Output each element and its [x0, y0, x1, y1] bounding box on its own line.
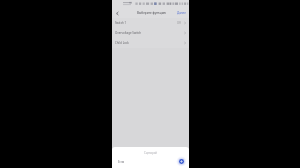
button[interactable]: Switch 1	[112, 18, 189, 28]
staticText: Overvoltage Switch	[115, 31, 142, 35]
button[interactable]: Add condition	[176, 156, 187, 167]
button[interactable]: Overvoltage Switch	[112, 28, 189, 38]
staticText: Далее	[177, 11, 186, 15]
staticText: Child Lock	[115, 41, 129, 45]
staticText: Switch 1	[115, 21, 127, 25]
staticText: Выберите функцию	[137, 11, 166, 15]
button[interactable]: Back	[114, 10, 121, 17]
staticText: Off	[177, 21, 181, 25]
button[interactable]: Далее	[174, 10, 189, 16]
button[interactable]: Child Lock	[112, 38, 189, 48]
button[interactable]: Если	[118, 160, 125, 164]
staticText: Если	[118, 160, 125, 164]
staticText: Сценарий	[144, 151, 157, 155]
